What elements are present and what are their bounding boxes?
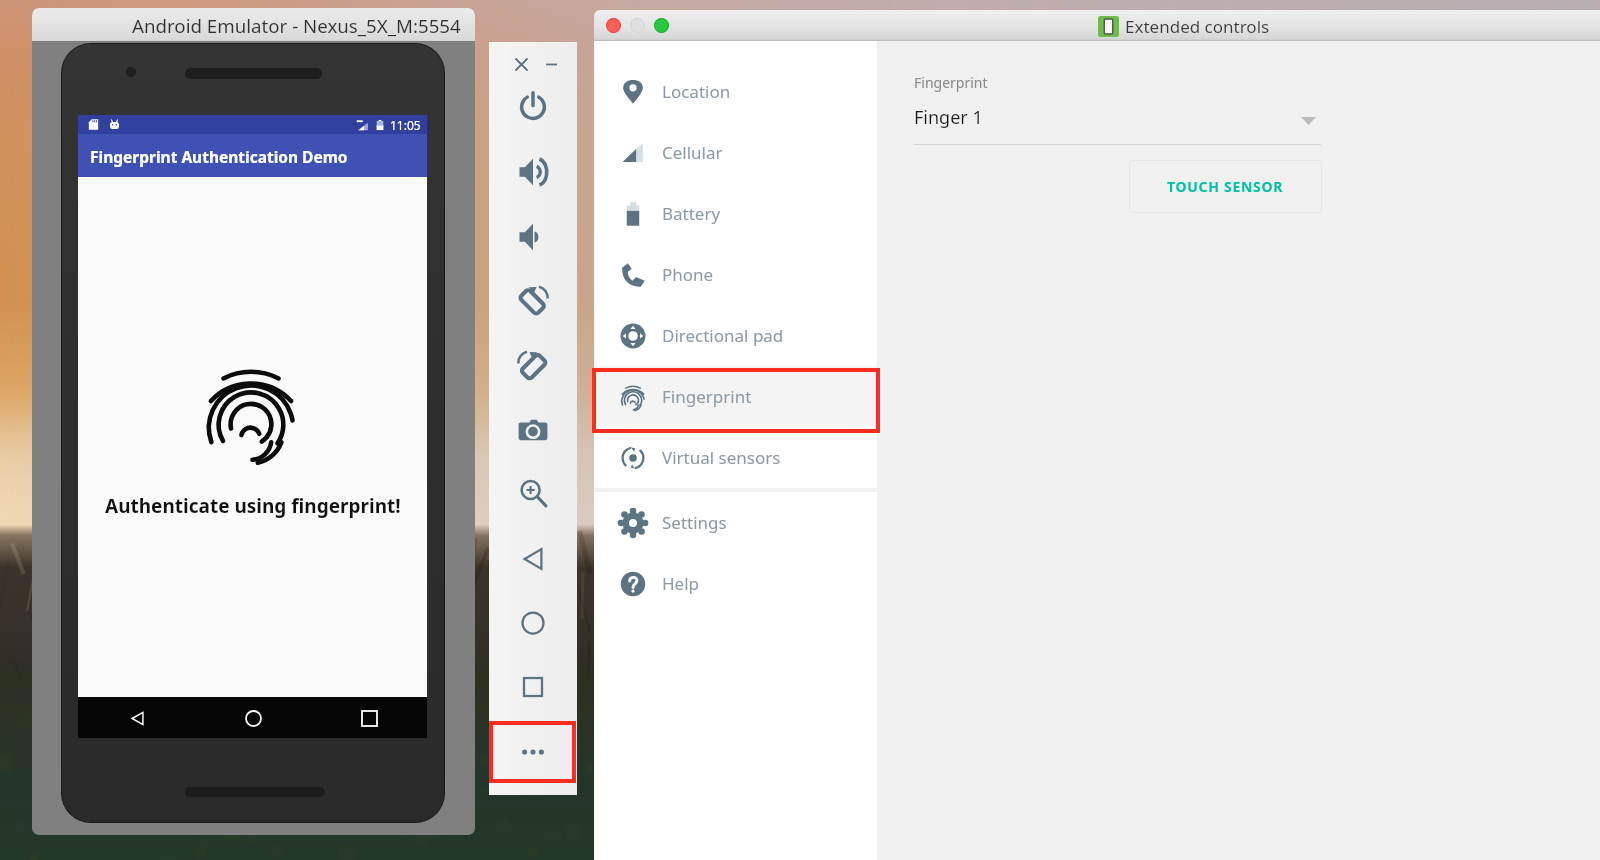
button[interactable]: Close [509,52,533,76]
button[interactable]: Fingerprint [594,366,877,427]
staticText: Help [662,572,700,595]
button[interactable]: Settings [594,492,877,553]
staticText: Finger 1 [914,105,983,130]
button[interactable]: Virtual sensors [594,427,877,488]
button[interactable]: Screenshot [509,406,557,454]
button[interactable]: TOUCH SENSOR [1129,160,1322,213]
staticText: Location [662,80,731,103]
button[interactable] [654,18,669,33]
staticText: Phone [662,263,714,286]
staticText: Fingerprint Authentication Demo [90,146,348,167]
button[interactable]: Directional pad [594,305,877,366]
button[interactable]: Back [509,535,557,583]
button[interactable]: Recents [509,663,557,711]
button[interactable]: Finger 1 [914,101,1321,133]
staticText: Settings [662,511,727,534]
button[interactable]: Home [509,599,557,647]
button[interactable]: Cellular [594,122,877,183]
staticText: Cellular [662,141,723,164]
staticText: Android Emulator - Nexus_5X_M:5554 [132,13,461,38]
button[interactable]: Recents [349,698,389,738]
staticText: Virtual sensors [662,446,781,469]
button[interactable]: Back [117,698,157,738]
button[interactable]: Home [233,698,273,738]
button[interactable]: Fingerprint Authentication Demo [78,134,427,177]
staticText: Battery [662,202,721,225]
button[interactable]: Phone [594,244,877,305]
staticText: Directional pad [662,324,784,347]
staticText: TOUCH SENSOR [1167,177,1284,196]
button[interactable]: Volume down [509,213,557,261]
button[interactable]: Battery [594,183,877,244]
button[interactable]: Help [594,553,877,614]
button[interactable]: More [509,728,557,776]
button[interactable]: Minimize [539,52,563,76]
staticText: Fingerprint [662,385,752,408]
button[interactable]: Power [509,83,557,131]
staticText: Authenticate using fingerprint! [105,493,401,519]
button[interactable] [630,18,645,33]
staticText: 11:05 [390,117,421,133]
button[interactable]: Location [594,61,877,122]
button[interactable]: Rotate right [509,342,557,390]
button[interactable] [606,18,621,33]
staticText: Fingerprint [914,73,988,92]
staticText: Extended controls [1125,15,1270,38]
button[interactable]: Rotate left [509,277,557,325]
button[interactable]: Volume up [509,148,557,196]
button[interactable]: Zoom [509,469,557,517]
